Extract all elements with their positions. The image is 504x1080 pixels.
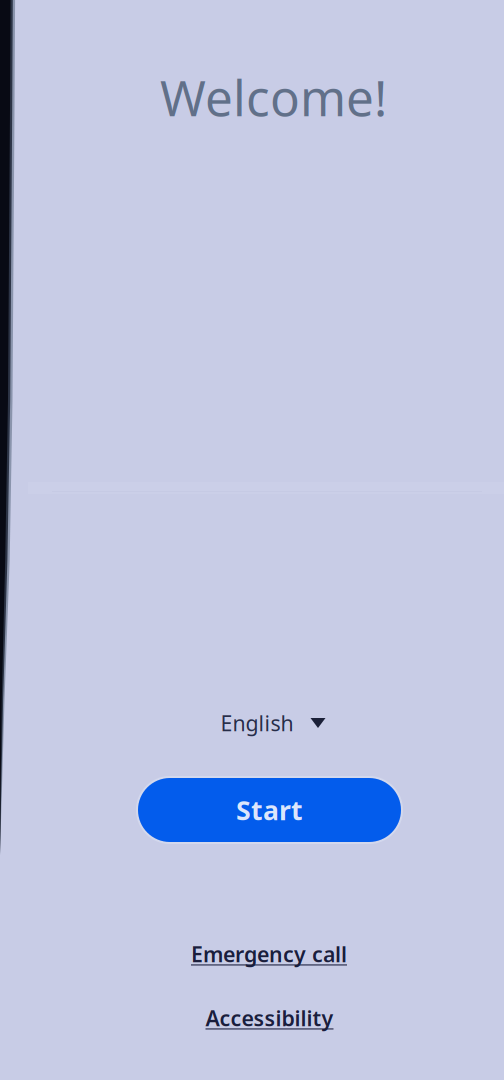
button[interactable]: Emergency call (181, 939, 357, 969)
button[interactable]: Start (133, 773, 405, 847)
staticText: Emergency call (191, 940, 347, 968)
staticText: Welcome! (160, 64, 387, 130)
staticText: Accessibility (205, 1004, 333, 1032)
button[interactable]: English (211, 705, 335, 741)
staticText: English (220, 709, 293, 737)
staticText: Start (236, 792, 303, 828)
button[interactable]: Accessibility (194, 1003, 344, 1033)
